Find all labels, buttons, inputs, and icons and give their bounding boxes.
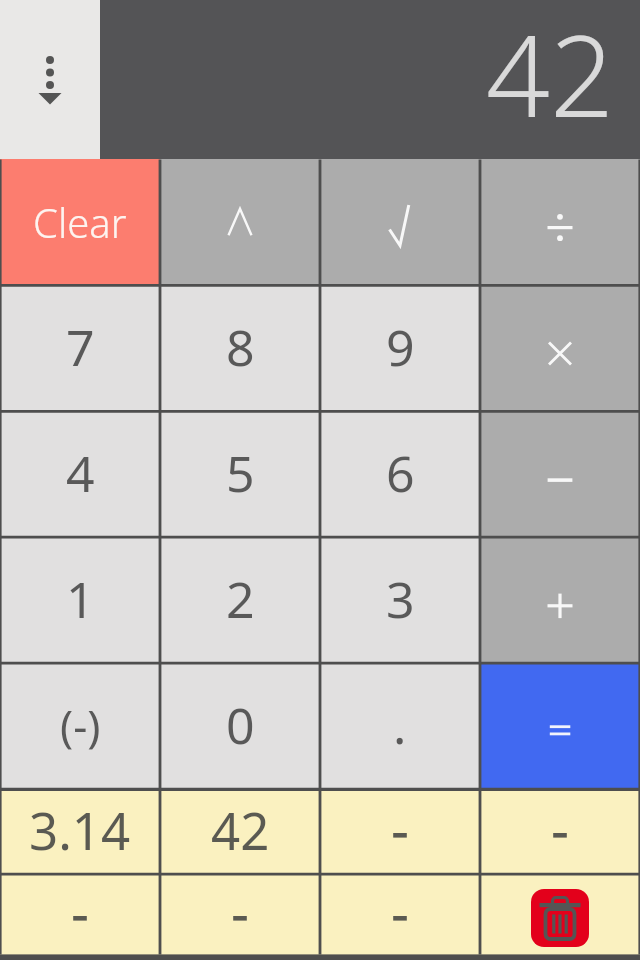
staticText: 2 (226, 565, 255, 633)
button[interactable]: 8 (160, 285, 320, 411)
button[interactable] (480, 874, 640, 960)
staticText: 3 (386, 565, 415, 633)
button[interactable] (0, 874, 160, 960)
staticText: 4 (66, 439, 95, 507)
button[interactable]: (-) (0, 663, 160, 789)
staticText: 7 (66, 313, 95, 381)
button[interactable]: 3.14 (0, 789, 160, 874)
staticText: 42 (211, 795, 270, 864)
button[interactable] (480, 663, 640, 789)
staticText: (-) (60, 695, 101, 755)
button[interactable]: 9 (320, 285, 480, 411)
button[interactable] (480, 159, 640, 285)
button[interactable] (160, 159, 320, 285)
button[interactable]: 2 (160, 537, 320, 663)
staticText: 42 (486, 0, 614, 150)
button[interactable] (0, 0, 100, 159)
button[interactable] (160, 874, 320, 960)
button[interactable] (480, 537, 640, 663)
staticText: 3.14 (29, 795, 131, 864)
button[interactable] (320, 789, 480, 874)
button[interactable]: 5 (160, 411, 320, 537)
button[interactable]: 42 (160, 789, 320, 874)
staticText: 8 (226, 313, 255, 381)
button[interactable] (480, 285, 640, 411)
staticText: 6 (386, 439, 415, 507)
staticText: 1 (66, 565, 95, 633)
button[interactable]: 4 (0, 411, 160, 537)
button[interactable]: 7 (0, 285, 160, 411)
button[interactable] (320, 874, 480, 960)
staticText: Clear (33, 195, 127, 249)
button[interactable] (480, 789, 640, 874)
staticText: 5 (226, 439, 255, 507)
button[interactable]: 3 (320, 537, 480, 663)
button[interactable]: Clear (0, 159, 160, 285)
button[interactable] (480, 411, 640, 537)
staticText: 9 (386, 313, 415, 381)
button[interactable]: 1 (0, 537, 160, 663)
button[interactable]: 6 (320, 411, 480, 537)
button[interactable]: . (320, 663, 480, 789)
staticText: . (393, 691, 407, 759)
staticText: 0 (226, 691, 255, 759)
button[interactable] (320, 159, 480, 285)
button[interactable]: 0 (160, 663, 320, 789)
